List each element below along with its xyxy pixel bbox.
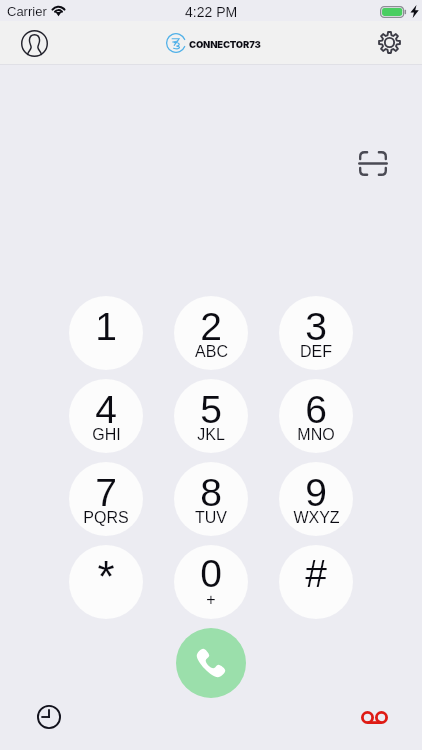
staticText: ABC	[195, 343, 228, 361]
staticText: 4:22 PM	[185, 4, 238, 20]
staticText: MNO	[297, 426, 335, 444]
button[interactable]: 8	[174, 462, 248, 536]
button[interactable]: 0	[174, 545, 248, 619]
staticText: 5	[200, 388, 222, 432]
button[interactable]: 9	[279, 462, 353, 536]
staticText: Carrier	[7, 4, 47, 19]
staticText: *	[97, 552, 115, 601]
button[interactable]: 2	[174, 296, 248, 370]
staticText: 0	[200, 552, 222, 596]
staticText: 8	[200, 471, 222, 515]
button[interactable]: #	[279, 545, 353, 619]
button[interactable]: 6	[279, 379, 353, 453]
button[interactable]: Voicemail	[352, 695, 396, 739]
button[interactable]: 1	[69, 296, 143, 370]
button[interactable]: 7	[69, 462, 143, 536]
staticText: TUV	[195, 509, 227, 527]
button[interactable]: Settings	[371, 24, 407, 60]
button[interactable]: Call	[176, 628, 246, 698]
staticText: 6	[305, 388, 327, 432]
staticText: 2	[200, 305, 222, 349]
staticText: DEF	[300, 343, 332, 361]
staticText: PQRS	[83, 509, 129, 527]
staticText: #	[305, 552, 327, 596]
button[interactable]: Scan QR code	[353, 143, 393, 183]
button[interactable]: *	[69, 545, 143, 619]
staticText: 9	[305, 471, 327, 515]
button[interactable]: 4	[69, 379, 143, 453]
staticText: GHI	[92, 426, 121, 444]
staticText: +	[206, 591, 216, 609]
staticText: JKL	[197, 426, 225, 444]
button[interactable]: 5	[174, 379, 248, 453]
staticText: 1	[95, 305, 117, 349]
staticText: 3	[305, 305, 327, 349]
button[interactable]: 3	[279, 296, 353, 370]
staticText: 7	[95, 471, 117, 515]
button[interactable]: Account	[16, 25, 52, 61]
staticText: CONNECTOR73	[189, 39, 261, 50]
button[interactable]: Recents	[27, 695, 71, 739]
staticText: 4	[95, 388, 117, 432]
staticText: WXYZ	[293, 509, 340, 527]
